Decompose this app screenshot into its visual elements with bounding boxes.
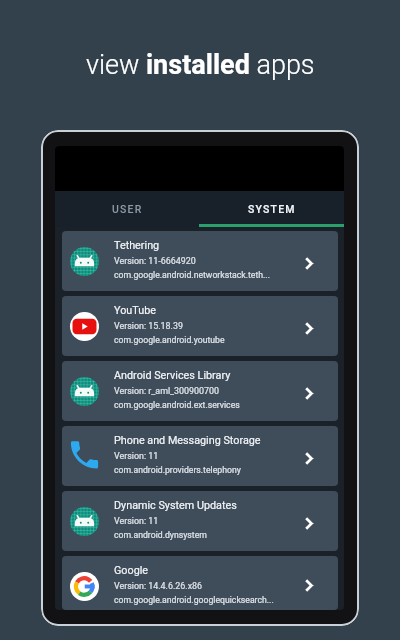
staticText: Version: r_aml_300900700 (114, 386, 220, 396)
button[interactable]: SYSTEM (199, 191, 344, 227)
staticText: com.android.providers.telephony (114, 465, 241, 475)
staticText: Version: 14.4.6.26.x86 (114, 581, 203, 591)
staticText: YouTube (114, 304, 156, 317)
staticText: USER (112, 203, 143, 215)
staticText: Version: 11-6664920 (114, 256, 196, 266)
staticText: Dynamic System Updates (114, 499, 237, 512)
other: App details (294, 361, 324, 421)
staticText: Version: 15.18.39 (114, 321, 183, 331)
staticText: com.google.android.googlequicksearch... (114, 595, 274, 605)
staticText: SYSTEM (248, 203, 296, 215)
staticText: Tethering (114, 239, 160, 252)
staticText: Android Services Library (114, 369, 231, 382)
staticText: Version: 11 (114, 516, 159, 526)
other: App details (294, 296, 324, 356)
staticText: Version: 11 (114, 451, 159, 461)
button[interactable]: USER (55, 191, 199, 227)
staticText: Phone and Messaging Storage (114, 434, 261, 447)
button[interactable]: Android Services Library (62, 361, 338, 421)
other: App details (294, 491, 324, 551)
staticText: view installed apps (86, 49, 315, 81)
staticText: Google (114, 564, 149, 577)
button[interactable]: YouTube (62, 296, 338, 356)
other: App details (294, 231, 324, 291)
button[interactable]: Phone and Messaging Storage (62, 426, 338, 486)
other: App details (294, 426, 324, 486)
staticText: com.google.android.ext.services (114, 400, 240, 410)
staticText: com.android.dynsystem (114, 530, 207, 540)
staticText: com.google.android.networkstack.teth... (114, 270, 270, 280)
button[interactable]: Dynamic System Updates (62, 491, 338, 551)
button[interactable]: Tethering (62, 231, 338, 291)
staticText: com.google.android.youtube (114, 335, 225, 345)
other: App details (294, 556, 324, 610)
button[interactable]: Google (62, 556, 338, 610)
